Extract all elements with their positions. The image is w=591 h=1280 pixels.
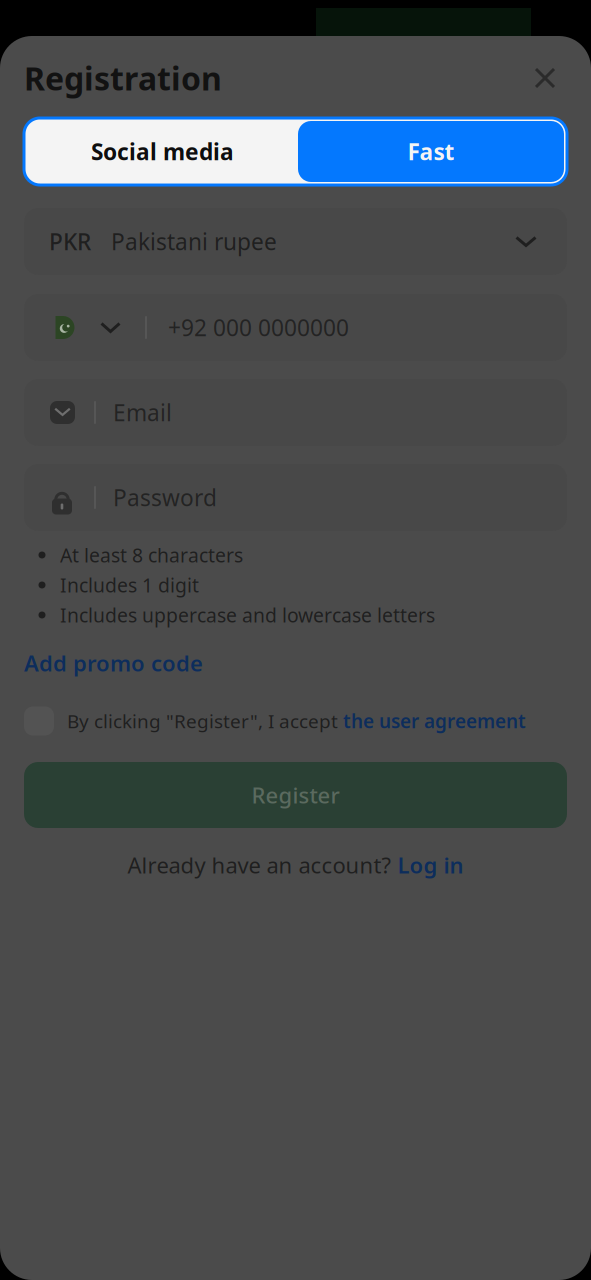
staticText: Social media (91, 136, 234, 167)
button[interactable]: By clicking "Register", I accept (24, 706, 567, 736)
staticText: Includes uppercase and lowercase letters (60, 602, 435, 628)
button[interactable]: Close (523, 56, 567, 100)
staticText: Fast (407, 136, 454, 167)
button[interactable]: Social media (27, 121, 298, 182)
staticText: Includes 1 digit (60, 572, 199, 598)
staticText: Password (113, 482, 217, 513)
staticText: Registration (24, 56, 222, 100)
staticText: Email (113, 397, 172, 428)
button[interactable]: Register (24, 762, 567, 828)
button[interactable]: PKR (24, 208, 567, 275)
staticText: At least 8 characters (60, 542, 243, 568)
button[interactable]: Log in (397, 850, 463, 880)
staticText: Already have an account? (127, 850, 397, 880)
staticText: By clicking "Register", I accept (67, 708, 343, 734)
button[interactable]: Fast (298, 121, 564, 182)
staticText: the user agreement (343, 708, 526, 734)
staticText: Add promo code (24, 648, 203, 678)
button[interactable]: Select country code (24, 294, 133, 361)
staticText: Log in (397, 850, 463, 880)
staticText: Pakistani rupee (111, 226, 277, 257)
staticText: PKR (49, 226, 91, 257)
staticText: +92 000 0000000 (168, 312, 349, 343)
button[interactable]: Add promo code (24, 646, 567, 680)
staticText: Register (251, 780, 339, 810)
